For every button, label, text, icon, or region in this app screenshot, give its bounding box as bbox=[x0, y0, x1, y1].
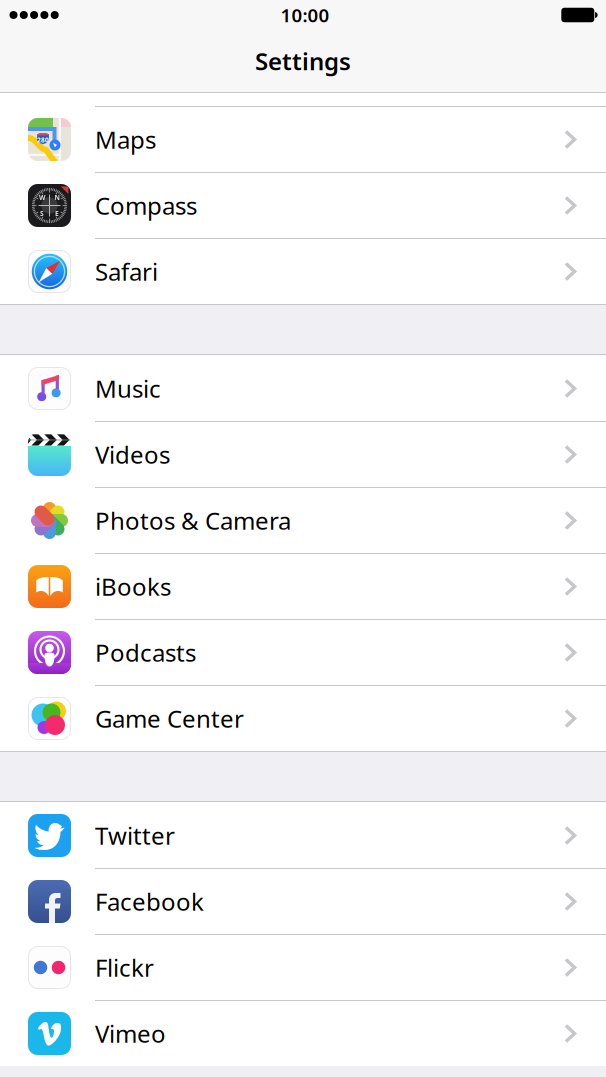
staticText: N bbox=[54, 193, 59, 202]
staticText: Settings bbox=[255, 45, 351, 77]
staticText: W bbox=[39, 193, 45, 202]
staticText: Podcasts bbox=[95, 637, 196, 668]
button[interactable]: Music bbox=[0, 355, 606, 421]
staticText: Twitter bbox=[95, 820, 175, 851]
button[interactable]: Flickr bbox=[0, 934, 606, 1000]
button[interactable]: Podcasts bbox=[0, 619, 606, 685]
button[interactable]: 280 bbox=[0, 106, 606, 172]
staticText: iBooks bbox=[95, 571, 171, 602]
button[interactable]: Videos bbox=[0, 421, 606, 487]
button[interactable]: iBooks bbox=[0, 553, 606, 619]
staticText: Game Center bbox=[95, 703, 244, 734]
staticText: E bbox=[55, 209, 59, 218]
staticText: Safari bbox=[95, 256, 158, 287]
staticText: 280 bbox=[37, 135, 49, 144]
button[interactable]: Safari bbox=[0, 238, 606, 304]
staticText: Music bbox=[95, 373, 161, 404]
staticText: Compass bbox=[95, 190, 197, 221]
button[interactable]: Photos & Camera bbox=[0, 487, 606, 553]
button[interactable]: N bbox=[0, 172, 606, 238]
staticText: Flickr bbox=[95, 952, 154, 983]
button[interactable]: Game Center bbox=[0, 685, 606, 751]
staticText: Videos bbox=[95, 439, 170, 470]
button[interactable]: Vimeo bbox=[0, 1000, 606, 1066]
staticText: Facebook bbox=[95, 886, 204, 917]
staticText: S bbox=[40, 209, 44, 218]
button[interactable]: Twitter bbox=[0, 802, 606, 868]
staticText: 10:00 bbox=[280, 3, 329, 27]
staticText: Maps bbox=[95, 124, 156, 155]
button[interactable]: Facebook bbox=[0, 868, 606, 934]
staticText: Photos & Camera bbox=[95, 505, 291, 536]
staticText: Vimeo bbox=[95, 1018, 166, 1049]
